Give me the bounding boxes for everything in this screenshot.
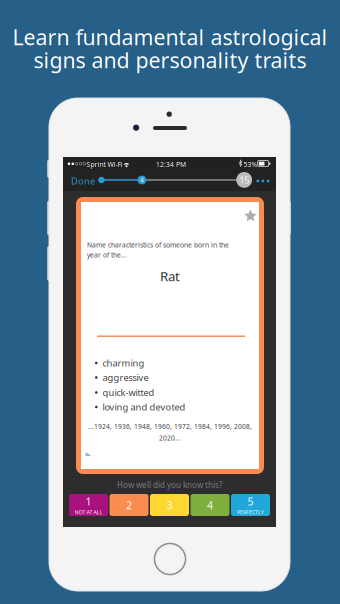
staticText: NOT AT ALL (74, 508, 102, 516)
staticText: ...1924, 1936, 1948, 1960, 1972, 1984, 1… (88, 422, 252, 431)
button[interactable]: 1 (69, 494, 108, 516)
staticText: quick-witted (103, 386, 155, 399)
staticText: signs and personality traits (33, 46, 306, 74)
staticText: 53% (243, 160, 257, 169)
button[interactable]: 2 (109, 494, 148, 516)
staticText: 4 (207, 498, 213, 512)
staticText: Sprint Wi-Fi (86, 160, 122, 169)
staticText: Done (71, 175, 95, 187)
staticText: Learn fundamental astrological (12, 23, 327, 51)
staticText: year of the... (87, 251, 127, 259)
button[interactable]: Done (68, 171, 98, 191)
button[interactable]: 4 (190, 494, 229, 516)
button[interactable]: More (255, 171, 270, 191)
staticText: Rat (160, 267, 180, 285)
staticText: PERFECTLY (237, 508, 264, 516)
staticText: 1 (85, 494, 91, 509)
staticText: 5 (247, 494, 253, 509)
button[interactable]: Favourite (240, 205, 261, 226)
button[interactable]: 5 (231, 494, 270, 516)
button[interactable]: Undo (81, 450, 99, 470)
staticText: Name characteristics of someone born in … (87, 241, 229, 249)
staticText: aggressive (103, 371, 149, 384)
staticText: 3 (166, 498, 172, 512)
staticText: How well did you know this? (117, 480, 222, 490)
staticText: charming (103, 357, 145, 369)
staticText: 15 (239, 174, 249, 186)
staticText: 4 (140, 176, 144, 184)
staticText: 12:34 PM (156, 160, 186, 169)
button[interactable]: 3 (150, 494, 189, 516)
staticText: loving and devoted (103, 401, 186, 413)
staticText: 2 (126, 498, 132, 512)
staticText: 2020... (159, 434, 181, 442)
